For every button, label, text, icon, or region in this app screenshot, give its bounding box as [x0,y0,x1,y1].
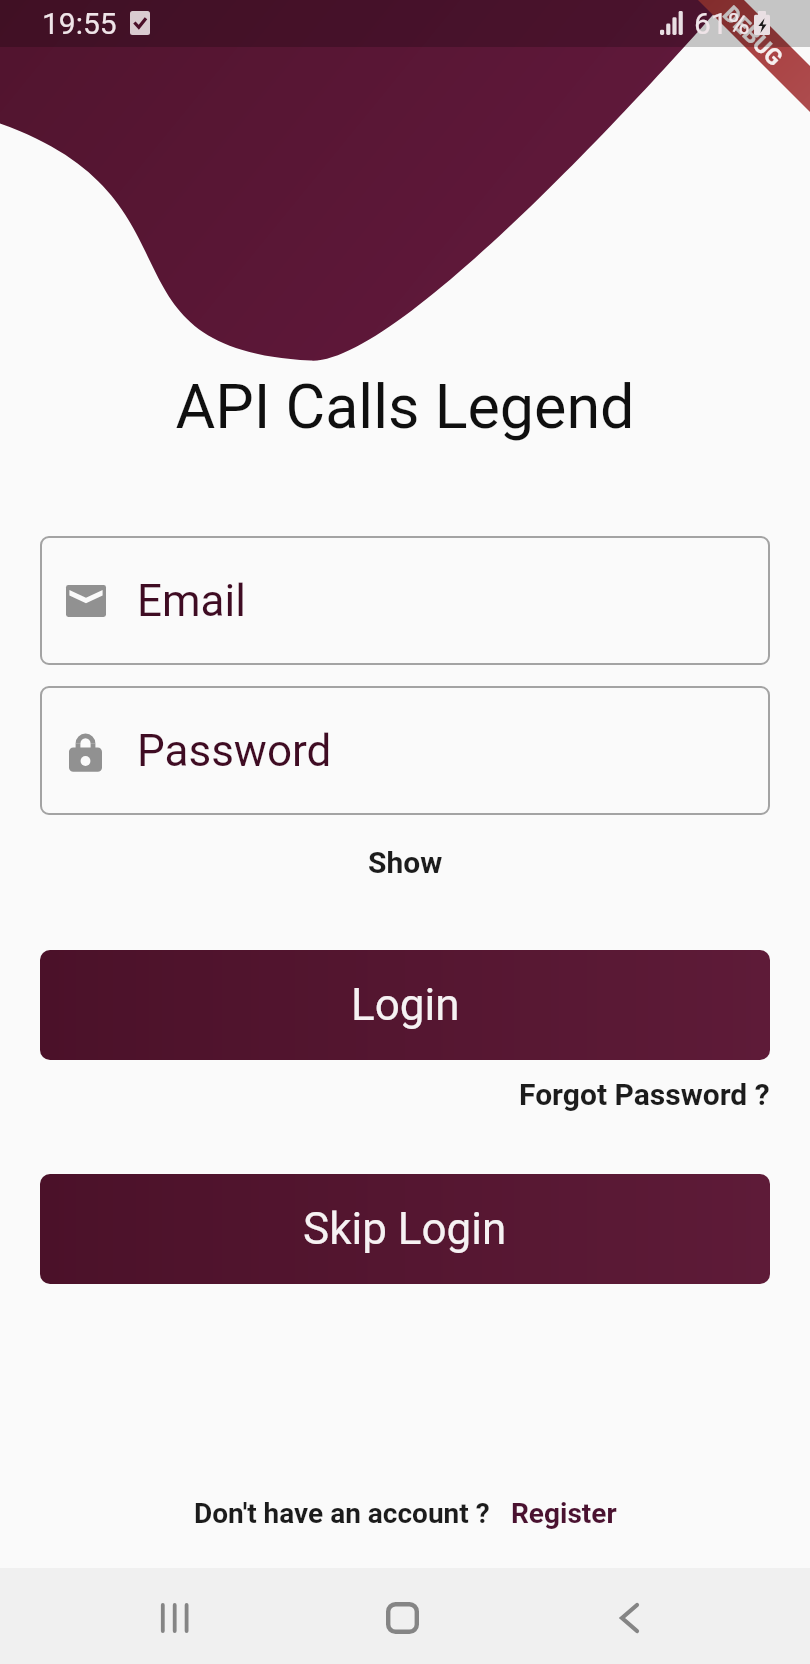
staticText: Don't have an account ? [194,1497,490,1530]
staticText: Forgot Password ? [519,1077,770,1112]
staticText: Password [137,725,332,777]
staticText: Show [368,845,443,880]
button[interactable]: Recent apps [125,1570,221,1664]
button[interactable]: Login [40,950,770,1060]
staticText: Skip Login [303,1203,507,1255]
button[interactable]: Password [40,686,770,815]
staticText: Register [511,1497,617,1530]
button[interactable]: Skip Login [40,1174,770,1284]
staticText: 61% [694,6,750,41]
staticText: Login [351,979,460,1031]
button[interactable]: Show [368,845,443,880]
button[interactable]: Back [581,1570,677,1664]
staticText: 19:55 [42,6,117,41]
button[interactable]: Register [511,1497,617,1530]
staticText: Email [137,575,246,627]
button[interactable]: Home [354,1570,450,1664]
button[interactable]: Email [40,536,770,665]
staticText: API Calls Legend [0,371,810,442]
button[interactable]: Forgot Password ? [519,1077,770,1112]
staticText: DEBUG [717,1,788,72]
